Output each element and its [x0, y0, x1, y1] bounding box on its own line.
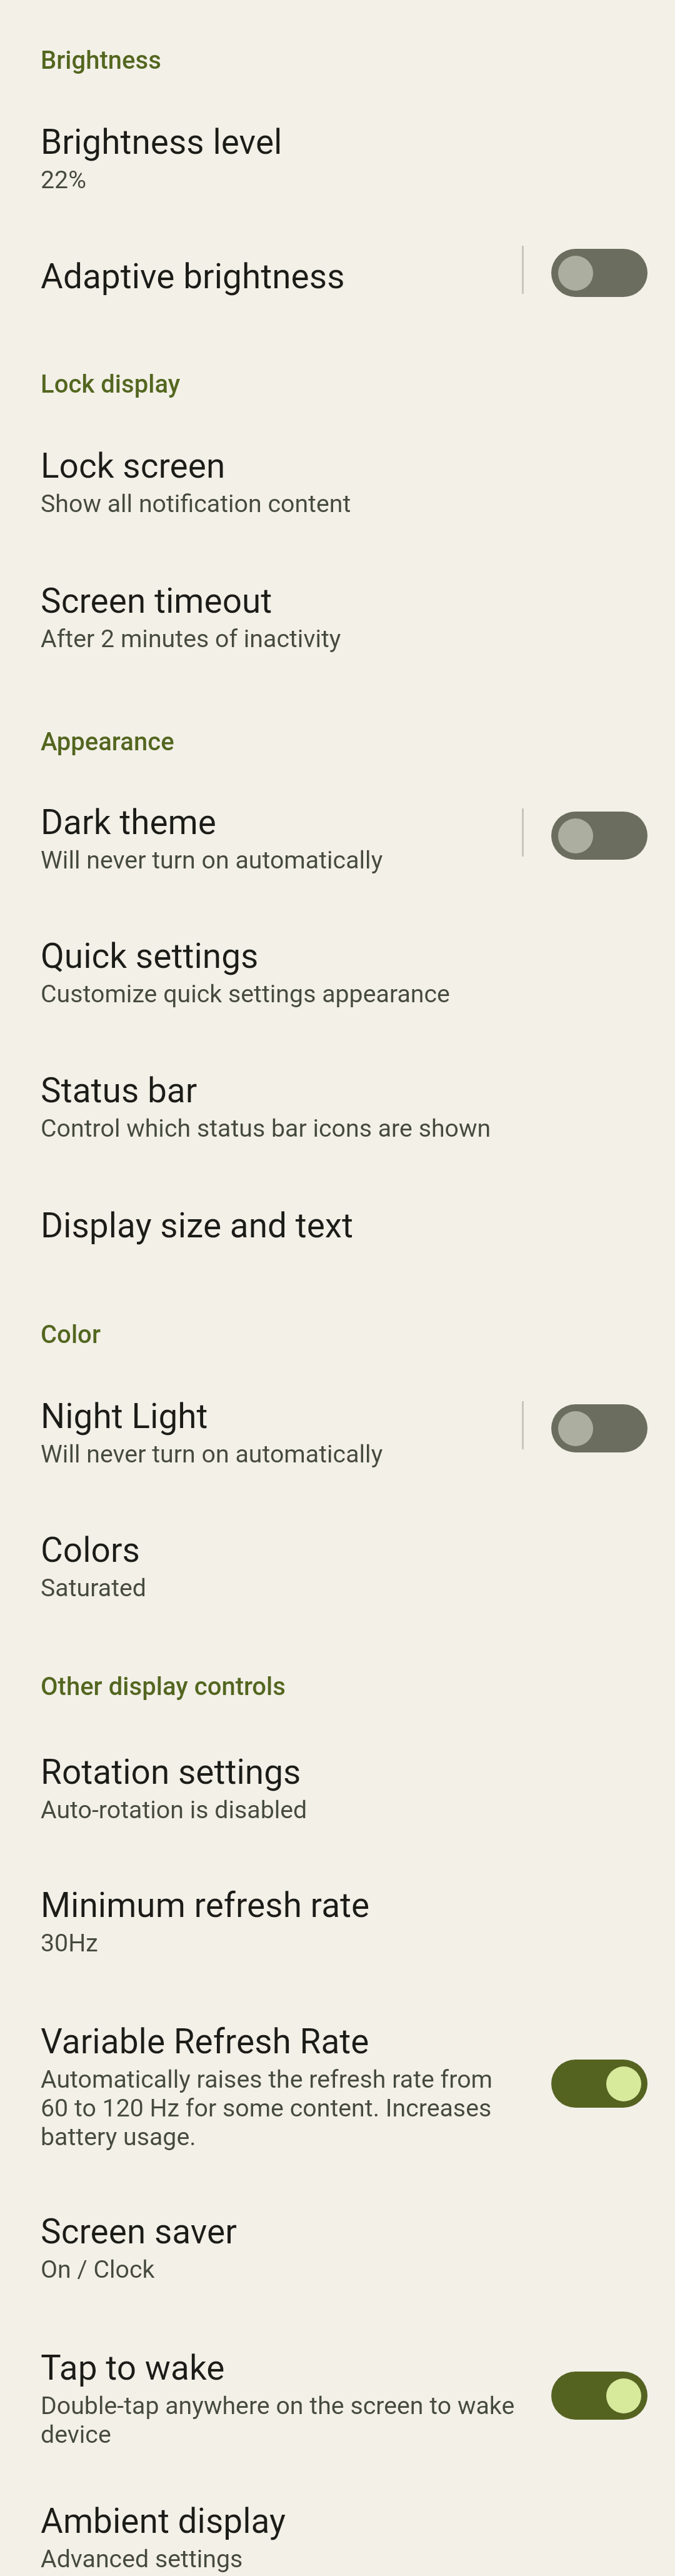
button[interactable]	[0, 1175, 675, 1275]
staticText: Lock display	[41, 370, 181, 399]
staticText: On / Clock	[41, 2255, 155, 2284]
staticText: Saturated	[41, 1574, 147, 1602]
button[interactable]	[0, 1041, 675, 1169]
staticText: 30Hz	[41, 1929, 98, 1958]
button[interactable]: Adaptive brightness	[551, 249, 647, 297]
staticText: Other display controls	[41, 1672, 286, 1701]
staticText: Lock screen	[41, 446, 226, 486]
staticText: 22%	[41, 166, 86, 194]
button[interactable]: Variable Refresh Rate	[551, 2060, 647, 2108]
staticText: Will never turn on automatically	[41, 1440, 383, 1469]
button[interactable]	[0, 548, 675, 679]
staticText: Ambient display	[41, 2501, 286, 2541]
staticText: Automatically raises the refresh rate fr…	[41, 2065, 519, 2151]
staticText: Appearance	[41, 727, 174, 757]
button[interactable]: Dark theme	[551, 812, 647, 860]
staticText: Customize quick settings appearance	[41, 980, 450, 1009]
button[interactable]: Night Light	[551, 1404, 647, 1452]
staticText: Advanced settings	[41, 2545, 243, 2573]
button[interactable]	[0, 1722, 675, 1851]
staticText: Brightness level	[41, 122, 282, 162]
staticText: Colors	[41, 1530, 140, 1570]
button[interactable]	[0, 775, 675, 900]
button[interactable]: Tap to wake	[551, 2372, 647, 2420]
staticText: Quick settings	[41, 936, 259, 976]
button[interactable]	[0, 2182, 675, 2311]
staticText: Show all notification content	[41, 490, 351, 518]
button[interactable]	[0, 2317, 675, 2463]
button[interactable]	[0, 1367, 675, 1494]
staticText: Auto-rotation is disabled	[41, 1796, 307, 1824]
staticText: Screen timeout	[41, 581, 272, 621]
staticText: Tap to wake	[41, 2348, 225, 2388]
staticText: Display size and text	[41, 1205, 354, 1245]
button[interactable]	[0, 1854, 675, 1983]
staticText: After 2 minutes of inactivity	[41, 625, 341, 653]
staticText: Status bar	[41, 1070, 197, 1110]
staticText: Night Light	[41, 1396, 208, 1436]
staticText: Control which status bar icons are shown	[41, 1114, 491, 1143]
staticText: Dark theme	[41, 802, 217, 842]
button[interactable]	[0, 225, 675, 325]
staticText: Rotation settings	[41, 1752, 301, 1792]
staticText: Brightness	[41, 46, 161, 75]
staticText: Color	[41, 1320, 101, 1349]
button[interactable]	[0, 1991, 675, 2151]
button[interactable]	[0, 413, 675, 544]
button[interactable]	[0, 907, 675, 1035]
button[interactable]	[0, 1501, 675, 1629]
staticText: Will never turn on automatically	[41, 846, 383, 875]
button[interactable]	[0, 100, 675, 213]
staticText: Double-tap anywhere on the screen to wak…	[41, 2392, 519, 2449]
button[interactable]	[0, 2470, 675, 2576]
staticText: Minimum refresh rate	[41, 1885, 370, 1925]
staticText: Variable Refresh Rate	[41, 2021, 369, 2061]
staticText: Adaptive brightness	[41, 256, 345, 296]
staticText: Screen saver	[41, 2211, 237, 2251]
